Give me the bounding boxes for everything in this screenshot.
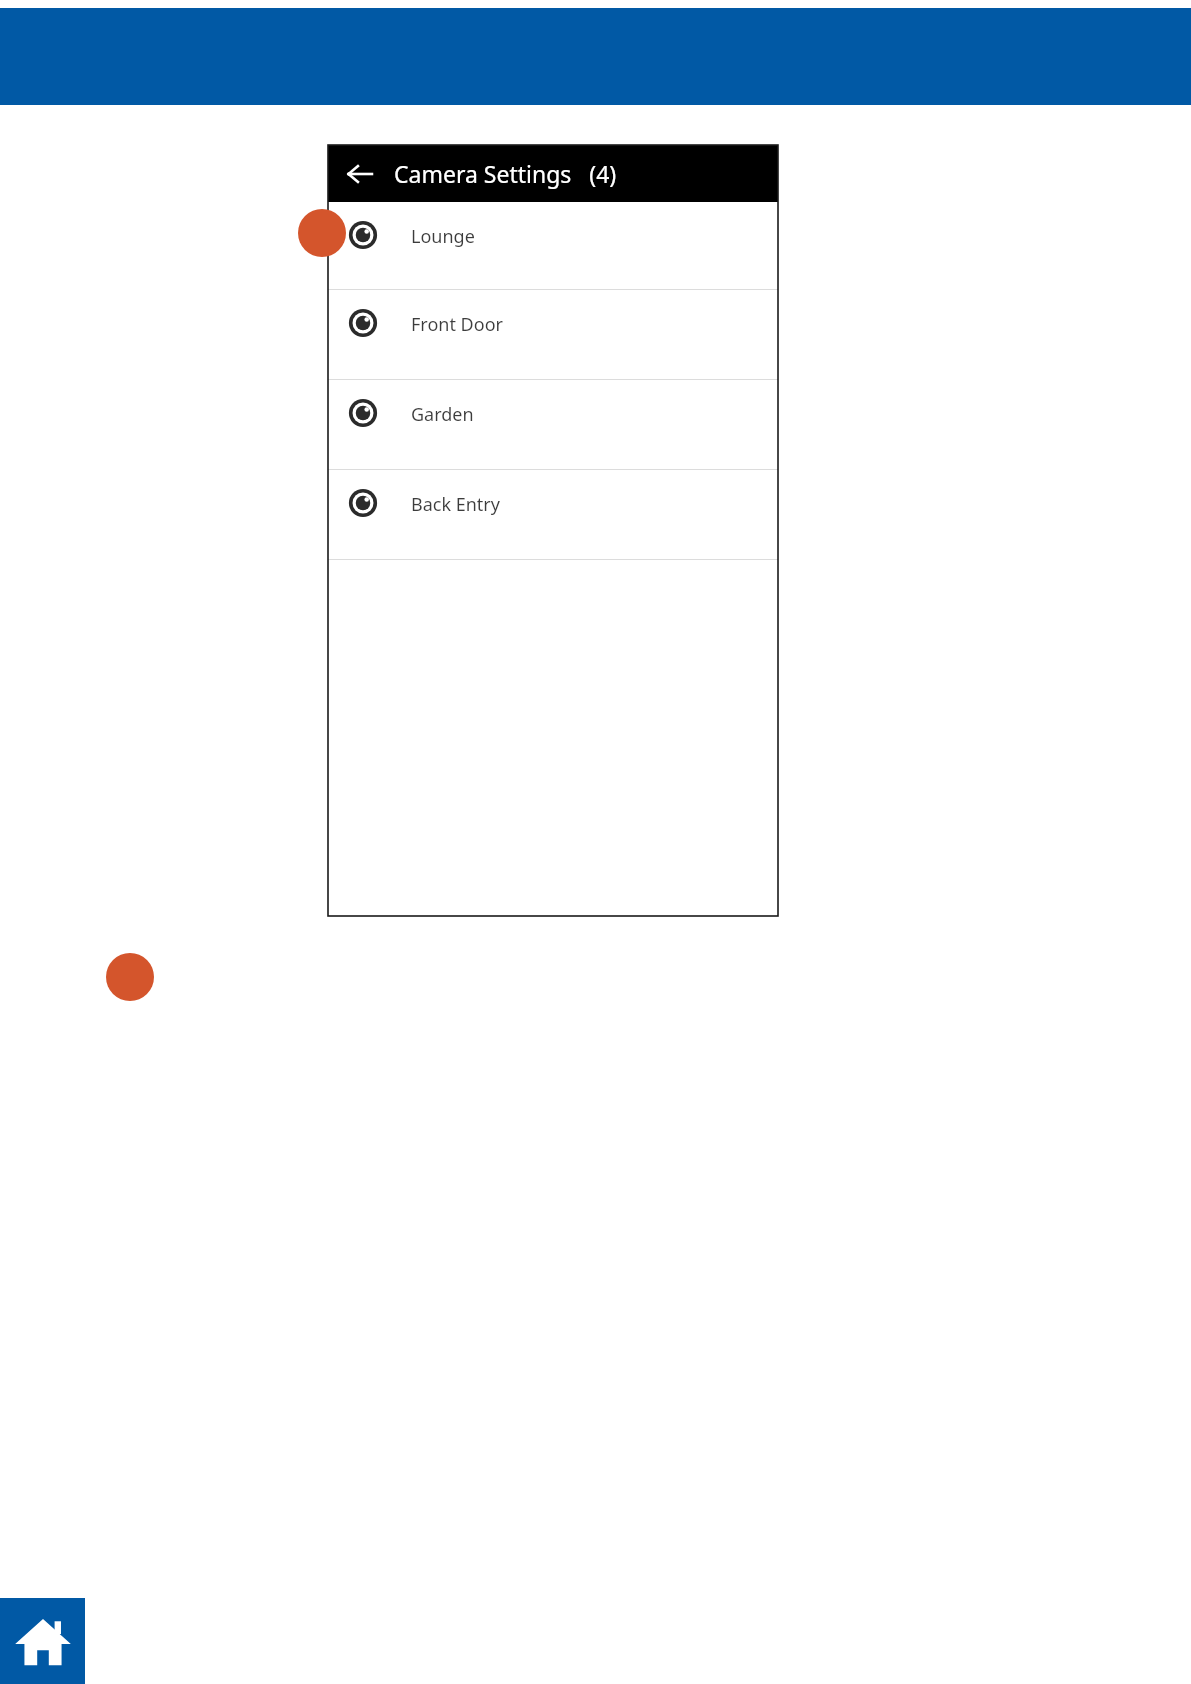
staticText: Garden	[411, 402, 474, 427]
button[interactable]: Lounge	[328, 202, 778, 289]
staticText: Front Door	[411, 312, 503, 337]
staticText: Lounge	[411, 224, 475, 249]
button[interactable]: Back	[342, 156, 378, 192]
button[interactable]: Back Entry	[328, 470, 778, 559]
button[interactable]: Garden	[328, 380, 778, 469]
button[interactable]: Home	[0, 1598, 85, 1684]
button[interactable]: Front Door	[328, 290, 778, 379]
staticText: Camera Settings (4)	[394, 158, 617, 189]
staticText: Back Entry	[411, 492, 500, 517]
